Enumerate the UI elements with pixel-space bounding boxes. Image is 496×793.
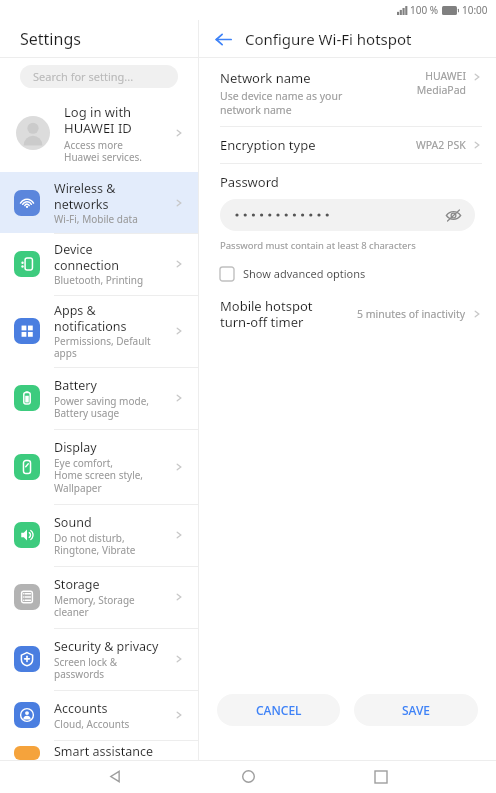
staticText: Password <box>220 173 279 191</box>
staticText: Log in with HUAWEI ID <box>64 103 132 136</box>
button[interactable]: SAVE <box>354 694 478 726</box>
staticText: Configure Wi-Fi hotspot <box>245 29 412 49</box>
button[interactable]: Storage <box>0 566 198 628</box>
staticText: Storage <box>54 576 100 593</box>
staticText: Security & privacy <box>54 638 159 655</box>
staticText: Accounts <box>54 700 108 717</box>
button[interactable]: Apps & notifications <box>0 295 198 367</box>
staticText: Search for setting... <box>33 69 134 84</box>
button[interactable]: Wireless & networks <box>0 172 198 233</box>
staticText: Show advanced options <box>243 266 366 281</box>
button[interactable]: CANCEL <box>217 694 340 726</box>
button[interactable]: Home <box>230 760 266 793</box>
staticText: Permissions, Default apps <box>54 334 151 360</box>
button[interactable]: Sound <box>0 504 198 566</box>
button[interactable]: Mobile hotspot turn-off timer <box>220 297 482 330</box>
button[interactable]: Accounts <box>0 690 198 740</box>
staticText: Access more Huawei services. <box>64 138 143 164</box>
staticText: Apps & notifications <box>54 302 127 334</box>
staticText: Display <box>54 439 97 456</box>
staticText: Wi-Fi, Mobile data <box>54 212 138 226</box>
button[interactable]: Show password <box>443 205 463 225</box>
staticText: 10:00 <box>462 3 488 17</box>
staticText: SAVE <box>402 702 431 718</box>
staticText: Sound <box>54 514 92 531</box>
button[interactable]: Log in with HUAWEI ID <box>0 94 198 172</box>
staticText: HUAWEI MediaPad <box>416 69 466 97</box>
button[interactable]: Show password <box>220 199 475 231</box>
button[interactable]: Display <box>0 429 198 504</box>
button[interactable]: Security & privacy <box>0 628 198 690</box>
staticText: Encryption type <box>220 136 416 154</box>
button[interactable]: Back <box>97 760 133 793</box>
staticText: Settings <box>20 28 81 50</box>
staticText: 100 % <box>410 3 439 17</box>
staticText: CANCEL <box>256 702 302 718</box>
button[interactable]: Device connection <box>0 233 198 295</box>
staticText: Screen lock & passwords <box>54 655 117 681</box>
staticText: Wireless & networks <box>54 180 116 212</box>
button[interactable]: Recents <box>363 760 399 793</box>
button[interactable]: Back <box>211 27 235 51</box>
button[interactable]: Battery <box>0 367 198 429</box>
button[interactable]: Show advanced options <box>220 266 366 281</box>
button[interactable]: Search for setting... <box>20 65 178 88</box>
staticText: Do not disturb, Ringtone, Vibrate <box>54 531 136 557</box>
button[interactable]: Encryption type <box>220 127 482 163</box>
staticText: Password must contain at least 8 charact… <box>220 239 416 252</box>
staticText: Memory, Storage cleaner <box>54 593 135 619</box>
button[interactable]: Network name <box>220 69 482 117</box>
staticText: Device connection <box>54 241 120 273</box>
staticText: Mobile hotspot turn-off timer <box>220 297 357 330</box>
staticText: 5 minutes of inactivity <box>357 307 466 321</box>
staticText: Smart assistance <box>54 743 153 760</box>
staticText: Battery <box>54 377 97 394</box>
staticText: Eye comfort, Home screen style, Wallpape… <box>54 456 144 495</box>
staticText: Use device name as your network name <box>220 89 343 117</box>
button[interactable]: Smart assistance <box>0 740 198 760</box>
staticText: Network name <box>220 69 311 87</box>
staticText: Cloud, Accounts <box>54 717 130 731</box>
staticText: WPA2 PSK <box>416 138 466 152</box>
staticText: Power saving mode, Battery usage <box>54 394 149 420</box>
staticText: Bluetooth, Printing <box>54 273 144 287</box>
